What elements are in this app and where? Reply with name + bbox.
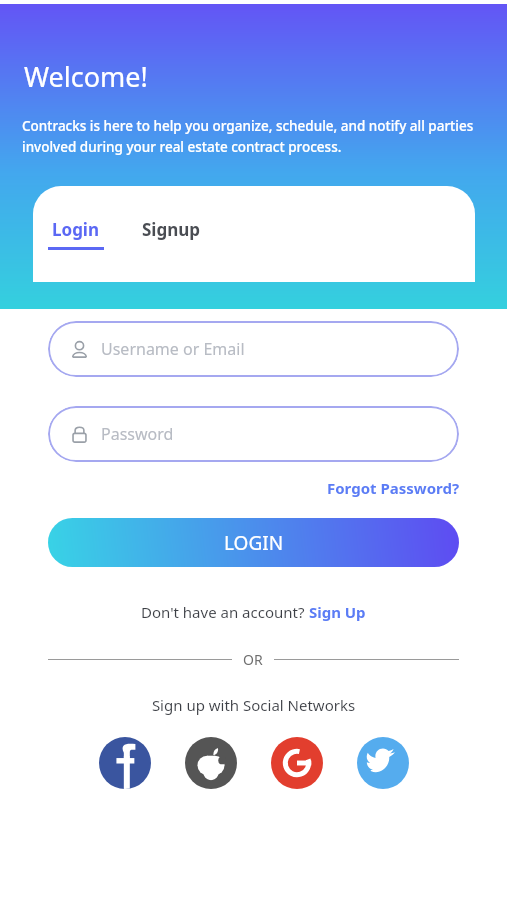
staticText: Welcome!	[24, 58, 148, 95]
staticText: Don't have an account?	[141, 602, 305, 622]
button[interactable]: LOGIN	[48, 518, 459, 567]
staticText: Forgot Password?	[327, 478, 460, 498]
button[interactable]: Login	[48, 218, 104, 250]
staticText: Sign up with Social Networks	[0, 695, 507, 715]
button[interactable]: Sign Up	[305, 602, 366, 622]
button[interactable]: Sign in with Facebook	[99, 737, 151, 789]
button[interactable]: Password	[48, 406, 459, 462]
button[interactable]: Sign in with Apple	[185, 737, 237, 789]
staticText: Contracks is here to help you organize, …	[22, 117, 487, 156]
button[interactable]: Username or Email	[48, 321, 459, 377]
button[interactable]: Signup	[142, 218, 201, 241]
button[interactable]: Sign in with Twitter	[357, 737, 409, 789]
button[interactable]: Sign in with Google	[271, 737, 323, 789]
staticText: Username or Email	[101, 338, 245, 360]
staticText: Password	[101, 423, 174, 445]
button[interactable]: Forgot Password?	[327, 478, 507, 498]
staticText: Login	[52, 218, 100, 241]
staticText: Sign Up	[305, 602, 366, 622]
staticText: LOGIN	[224, 530, 284, 556]
staticText: OR	[243, 650, 263, 669]
staticText: Signup	[142, 218, 201, 241]
